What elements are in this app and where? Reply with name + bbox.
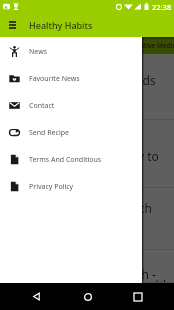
staticText: Best diet tips ever with - — [21, 266, 174, 282]
button[interactable]: Open navigation drawer — [0, 13, 24, 37]
staticText: Simple home remedy to — [24, 148, 174, 164]
button[interactable]: Home — [74, 283, 101, 310]
button[interactable]: Back — [23, 283, 50, 310]
button[interactable]: Natural cures for teeth — [0, 188, 174, 250]
staticText: natural health for — [91, 277, 174, 282]
staticText: Natural cures for teeth — [24, 200, 174, 216]
staticText: Top 10 Super Foods — [45, 72, 174, 88]
staticText: Contact — [29, 101, 55, 111]
button[interactable]: Top 10 Super Foods — [0, 54, 174, 120]
button[interactable]: Simple home remedy to — [0, 120, 174, 188]
staticText: Terms And Conditious — [29, 155, 102, 165]
staticText: Healthy Habits — [29, 19, 93, 31]
staticText: Privacy Policy — [29, 182, 74, 192]
button[interactable]: Best diet tips ever with - — [0, 250, 174, 283]
button[interactable]: Favourite News — [0, 65, 142, 92]
button[interactable]: Contact — [0, 92, 142, 119]
staticText: Favourite News — [29, 74, 80, 84]
staticText: News — [29, 47, 47, 57]
staticText: Send Recipe — [29, 128, 69, 138]
button[interactable]: Privacy Policy — [0, 173, 142, 200]
staticText: 22:38 — [152, 2, 172, 12]
button[interactable]: Send Recipe — [0, 119, 142, 146]
button[interactable]: Terms And Conditious — [0, 146, 142, 173]
button[interactable]: Recent apps — [124, 283, 151, 310]
staticText: HEALTH FITNESS Alternative Medicine DIET — [51, 41, 174, 50]
button[interactable]: News — [0, 38, 142, 65]
